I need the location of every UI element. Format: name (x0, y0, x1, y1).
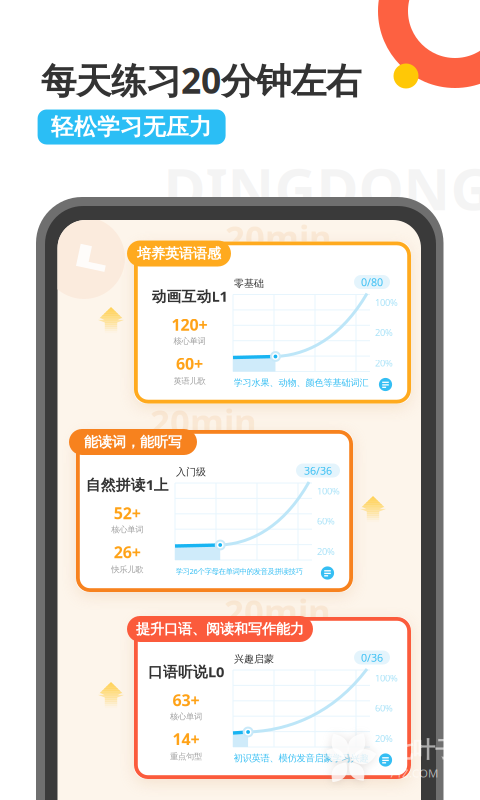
button[interactable]: 口语听说L0 (0, 0, 480, 800)
staticText: 能读词，能听写 (84, 433, 182, 451)
staticText: 20min (224, 587, 331, 635)
staticText: 60% (375, 702, 393, 714)
staticText: 0/36 (361, 650, 383, 665)
staticText: 20% (375, 357, 393, 369)
staticText: 36/36 (304, 463, 332, 478)
staticText: 快乐儿歌 (111, 564, 143, 575)
button[interactable]: 轻松学习无压力 (0, 0, 480, 800)
staticText: 兴趣启蒙 (234, 653, 274, 665)
button[interactable]: 自然拼读1上 (0, 0, 480, 800)
staticText: 7YZ.COM (389, 765, 438, 781)
staticText: 培养英语语感 (137, 245, 221, 262)
staticText: 52+ (114, 502, 141, 524)
staticText: 63+ (172, 689, 199, 711)
staticText: 14+ (172, 728, 199, 750)
staticText: 26+ (114, 541, 141, 563)
staticText: 100% (375, 296, 398, 309)
staticText: 轻松学习无压力 (51, 113, 212, 141)
staticText: 20% (375, 732, 393, 745)
staticText: 每天练习20分钟左右 (41, 56, 361, 104)
staticText: 动画互动L1 (151, 286, 227, 306)
staticText: 60% (317, 515, 335, 527)
staticText: 重点句型 (170, 751, 202, 762)
staticText: 20% (375, 326, 393, 339)
staticText: 120+ (171, 314, 207, 335)
staticText: 英语儿歌 (173, 376, 205, 386)
staticText: 学习水果、动物、颜色等基础词汇 (233, 377, 368, 388)
staticText: 20% (317, 545, 335, 558)
staticText: DINGDONG (163, 149, 480, 227)
staticText: 初识英语、模仿发音启蒙学习兴趣 (233, 752, 368, 764)
staticText: 0/80 (361, 275, 383, 289)
staticText: 核心单词 (170, 711, 202, 722)
staticText: 自然拼读1上 (86, 475, 169, 495)
staticText: 核心单词 (111, 524, 143, 535)
staticText: 提升口语、阅读和写作能力 (136, 620, 304, 638)
staticText: 100% (375, 672, 398, 684)
staticText: 七叶子 (391, 736, 457, 764)
staticText: 零基础 (234, 277, 264, 290)
staticText: 入门级 (176, 466, 206, 478)
staticText: 60+ (176, 353, 203, 374)
staticText: 口语听说L0 (148, 662, 224, 682)
staticText: 20min (150, 397, 257, 445)
staticText: 学习26个字母在单词中的发音及拼读技巧 (175, 566, 302, 576)
button[interactable]: 动画互动L1 (0, 0, 480, 800)
staticText: 核心单词 (173, 336, 205, 346)
staticText: 20min (225, 213, 332, 261)
staticText: 100% (317, 485, 340, 497)
